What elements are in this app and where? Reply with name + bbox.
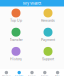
staticText: Scan: [28, 75, 36, 76]
staticText: Me: [55, 75, 60, 76]
staticText: Home: [2, 75, 11, 76]
staticText: Cards: [15, 75, 24, 76]
staticText: My Wallet: [23, 1, 41, 6]
button[interactable]: Cards: [13, 71, 26, 76]
button[interactable]: Support: [32, 47, 64, 61]
staticText: Stats: [41, 75, 49, 76]
button[interactable]: Rewards: [32, 8, 64, 23]
button[interactable]: Payment: [32, 28, 64, 42]
staticText: Support: [42, 57, 54, 61]
staticText: Payment: [41, 38, 55, 42]
staticText: Top Up: [10, 18, 22, 23]
button[interactable]: Top Up: [0, 8, 32, 23]
staticText: Rewards: [41, 18, 55, 23]
button[interactable]: History: [0, 47, 32, 61]
button[interactable]: Scan: [26, 71, 38, 76]
button[interactable]: Me: [51, 71, 64, 76]
button[interactable]: Transfer: [0, 28, 32, 42]
button[interactable]: Home: [0, 71, 13, 76]
staticText: Transfer: [9, 38, 22, 42]
staticText: History: [10, 57, 22, 61]
button[interactable]: Stats: [38, 71, 51, 76]
